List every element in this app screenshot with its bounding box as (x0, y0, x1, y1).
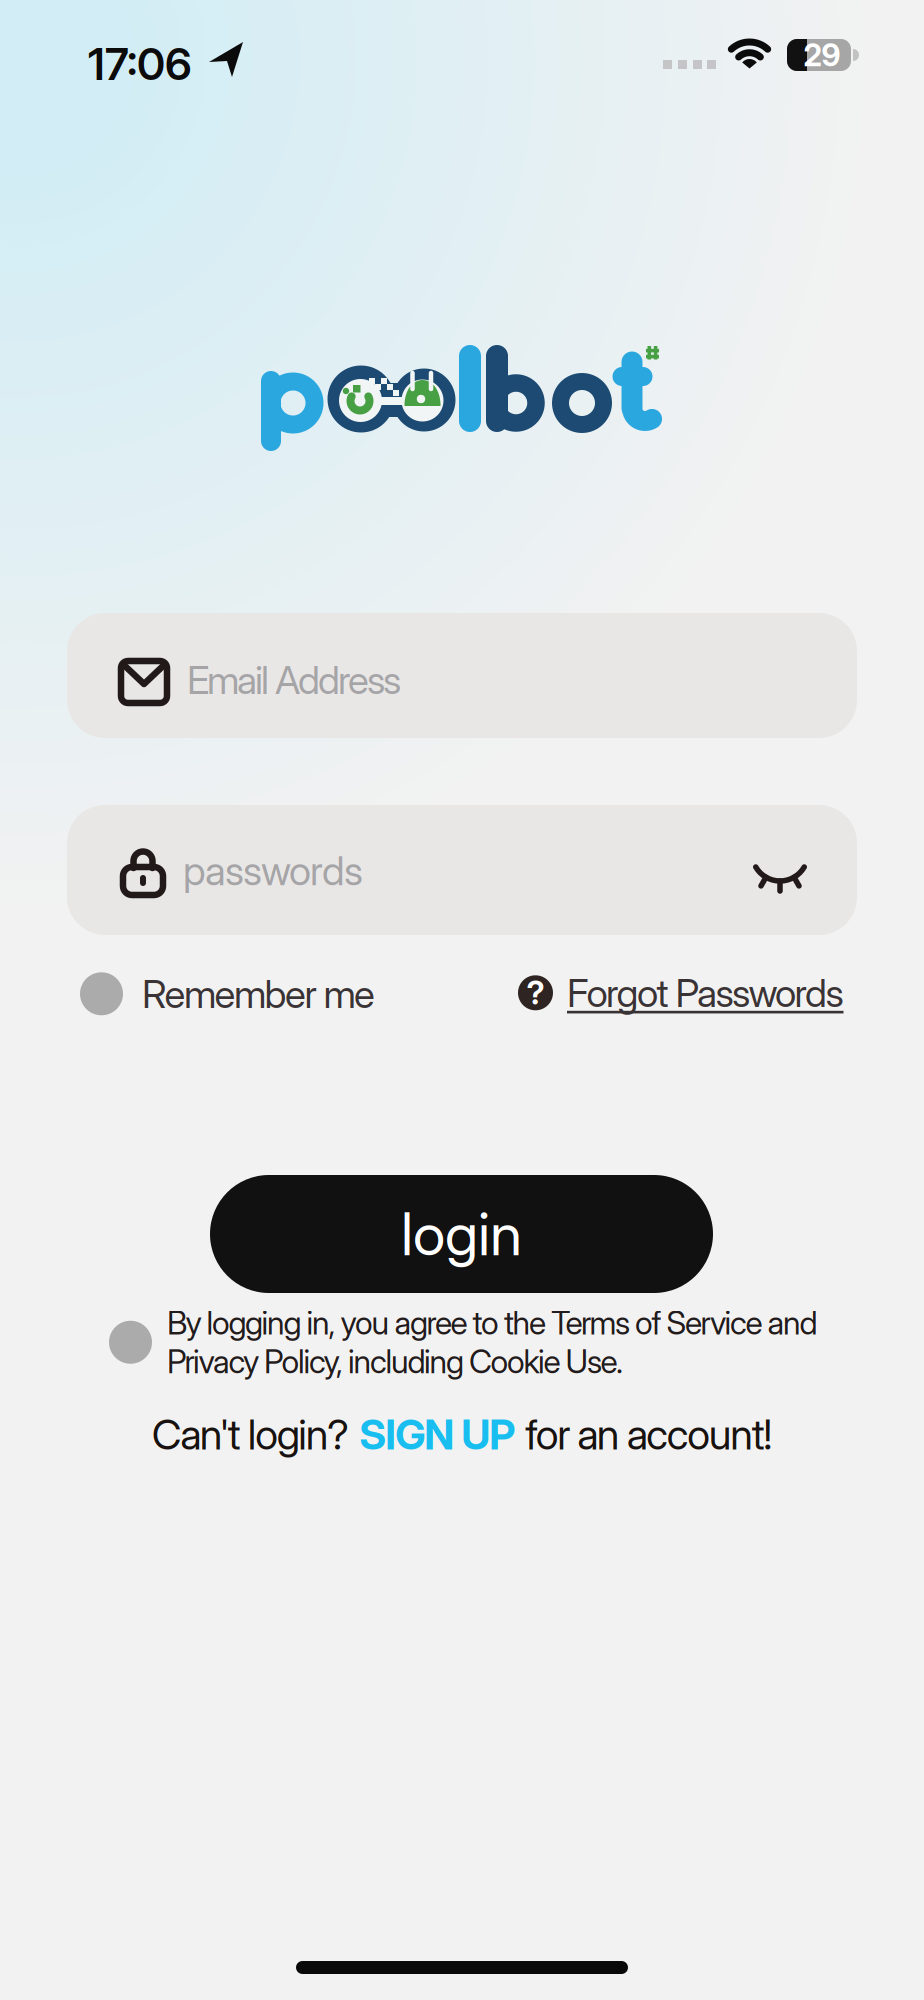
staticText: passwords (183, 847, 363, 894)
button[interactable]: ? (518, 970, 843, 1016)
button[interactable]: By logging in, you agree to the Terms of… (109, 1304, 817, 1380)
staticText: Privacy Policy, including Cookie Use. (167, 1343, 623, 1381)
button[interactable]: Remember me (80, 971, 375, 1017)
staticText: SIGN UP (359, 1410, 515, 1459)
staticText: Forgot Passwords (567, 970, 843, 1016)
staticText: ? (526, 974, 544, 1012)
button[interactable]: login (210, 1175, 713, 1293)
button[interactable]: Email Address (67, 613, 857, 738)
button[interactable]: Show password (737, 810, 823, 896)
staticText: login (401, 1199, 522, 1269)
staticText: By logging in, you agree to the Terms of… (167, 1304, 817, 1342)
staticText: 29 (803, 37, 840, 73)
staticText: for an account! (525, 1410, 772, 1459)
button[interactable]: passwords (67, 805, 857, 935)
button[interactable]: SIGN UP (359, 1410, 515, 1459)
staticText: Remember me (142, 971, 375, 1017)
staticText: Email Address (187, 657, 401, 703)
staticText: 17:06 (88, 38, 192, 90)
staticText: Can't login? (152, 1410, 349, 1459)
